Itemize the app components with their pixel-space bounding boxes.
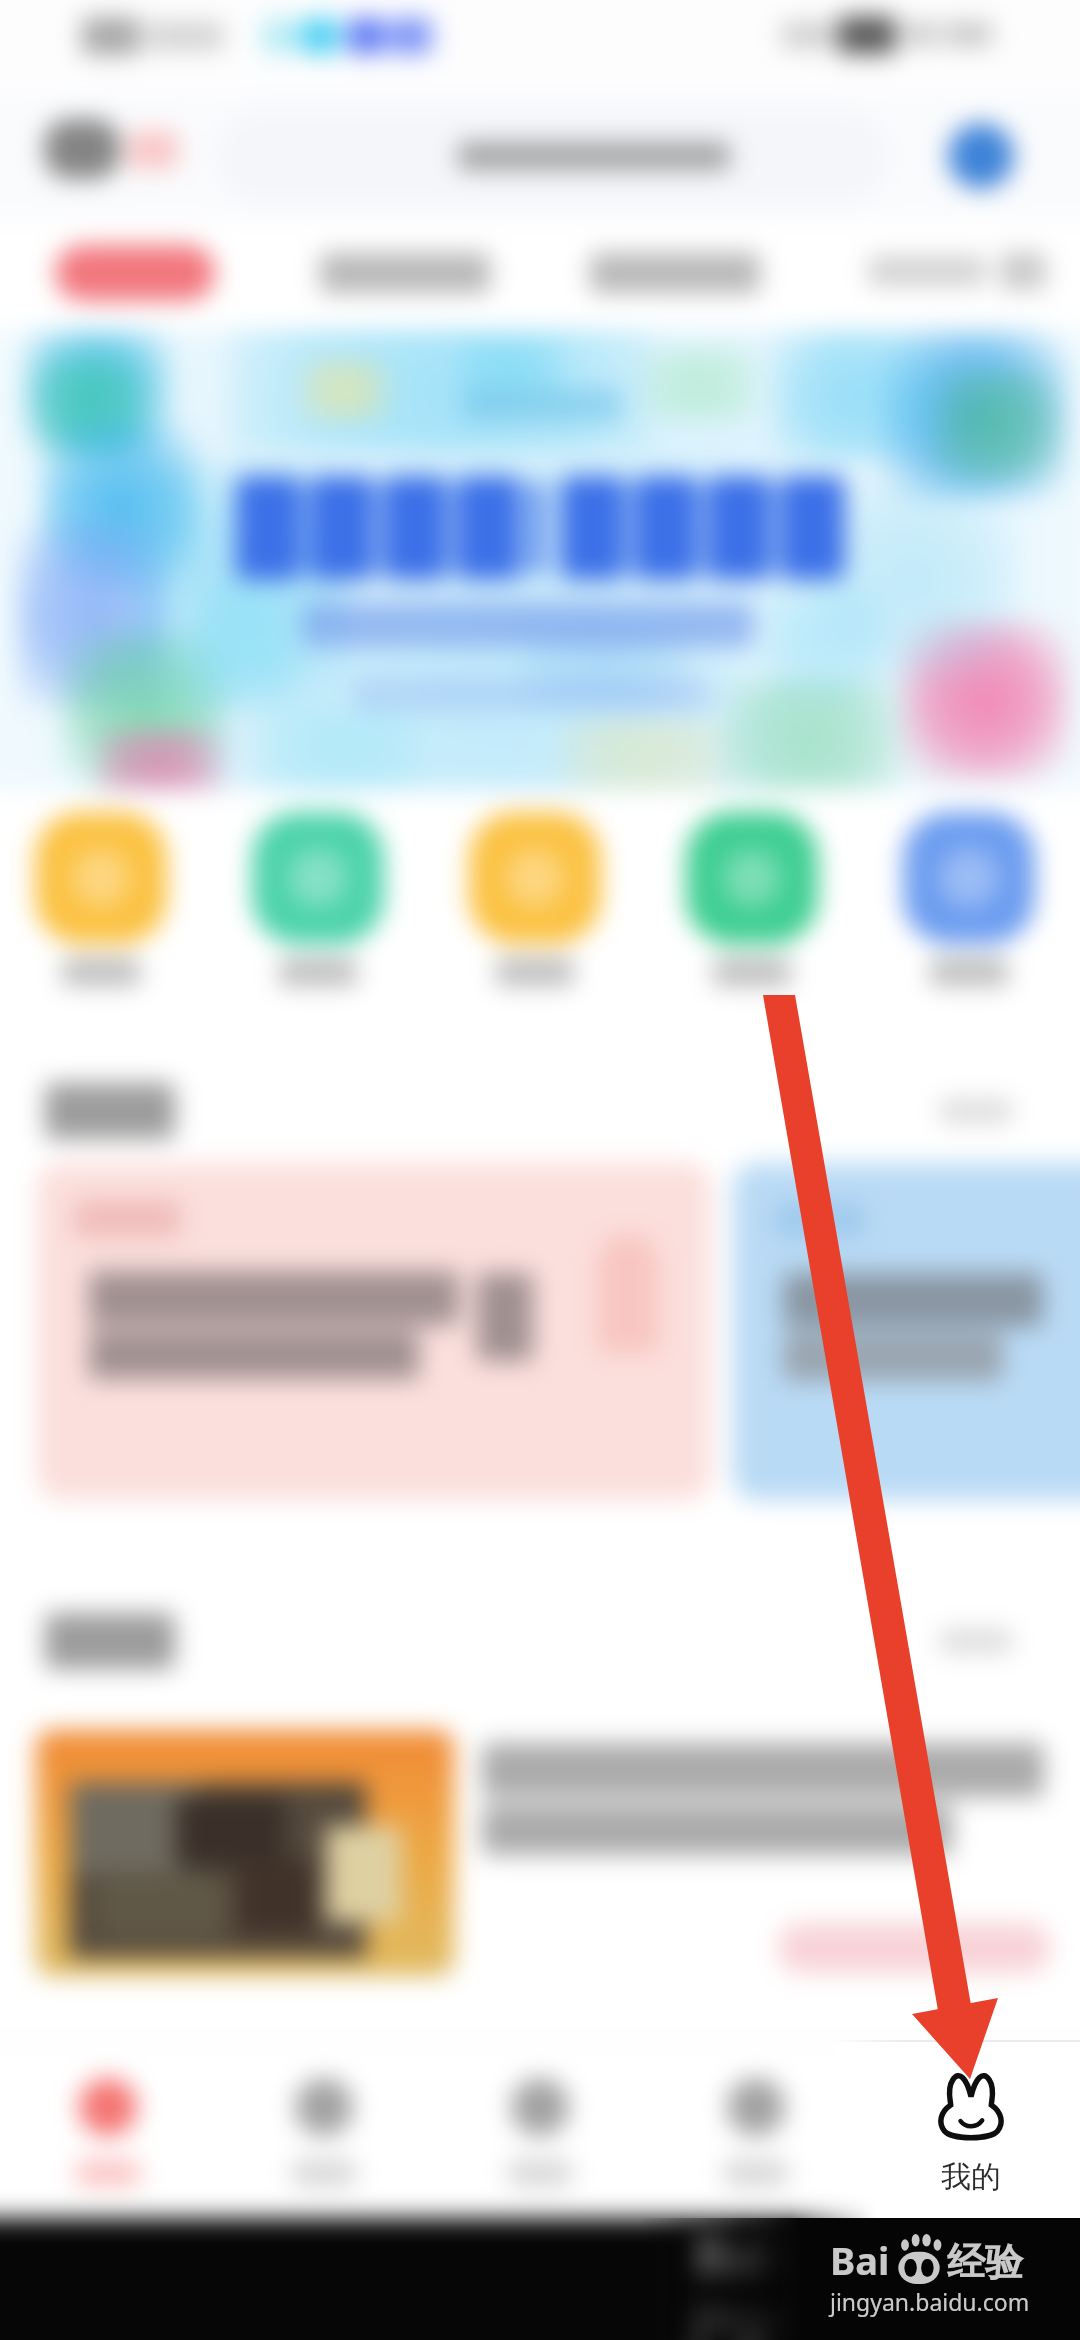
- staticText: 经验: [947, 2238, 1023, 2286]
- button[interactable]: [37, 1163, 711, 1500]
- button[interactable]: 我的: [790, 2040, 1080, 2218]
- button[interactable]: Shortcut 1: [35, 812, 167, 986]
- button[interactable]: Profile: [948, 123, 1014, 189]
- button[interactable]: Search: [215, 109, 890, 205]
- button[interactable]: Tab 3: [590, 253, 760, 293]
- button[interactable]: [36, 1730, 454, 1976]
- staticText: Bai du 经验: [696, 2218, 975, 2289]
- staticText: 我的: [932, 2149, 1012, 2199]
- button[interactable]: More: [940, 1099, 1012, 1123]
- staticText: 我的: [941, 2158, 1001, 2196]
- button[interactable]: Tab 4: [868, 256, 986, 286]
- button[interactable]: More: [940, 1629, 1012, 1653]
- button[interactable]: Messages: [648, 2042, 864, 2218]
- button[interactable]: [733, 1163, 1080, 1500]
- button[interactable]: Tab 1: [55, 245, 215, 301]
- button[interactable]: Shortcut 5: [903, 812, 1035, 986]
- staticText: Bai: [830, 2234, 890, 2286]
- button[interactable]: Shortcut 3: [469, 812, 601, 986]
- button[interactable]: Cart: [432, 2042, 648, 2218]
- button[interactable]: Shortcut 2: [252, 812, 384, 986]
- button[interactable]: Home: [0, 2042, 216, 2218]
- button[interactable]: Tab 2: [320, 253, 490, 293]
- staticText: jingyan.baidu.com: [830, 2286, 1030, 2317]
- button[interactable]: Shortcut 4: [686, 812, 818, 986]
- staticText: jingyan.baidu.com: [696, 2291, 1026, 2340]
- button[interactable]: 我的: [864, 2042, 1080, 2218]
- button[interactable]: Category: [216, 2042, 432, 2218]
